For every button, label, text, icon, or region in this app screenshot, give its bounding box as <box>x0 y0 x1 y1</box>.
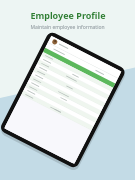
staticText: Maintain employee information <box>30 24 105 31</box>
button[interactable]: Employee profile tablet preview <box>0 0 135 180</box>
staticText: Employee Profile <box>30 9 106 21</box>
